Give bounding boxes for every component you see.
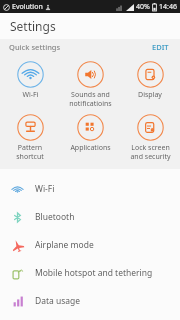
staticText: Wi-Fi (22, 90, 39, 100)
staticText: Airplane mode (35, 239, 94, 251)
staticText: Display (138, 90, 162, 100)
staticText: Mobile hotspot and tethering (35, 267, 153, 279)
button[interactable]: Data usage (0, 287, 180, 315)
button[interactable]: Wi-Fi (0, 175, 180, 203)
staticText: 14:46 (159, 2, 177, 12)
staticText: Data usage (35, 295, 81, 307)
button[interactable]: Mobile hotspot and tethering (0, 259, 180, 287)
button[interactable]: Sounds and notificatioins (60, 59, 120, 110)
staticText: Evolution (12, 2, 43, 12)
staticText: EDIT (152, 42, 169, 52)
staticText: Applications (70, 143, 111, 153)
staticText: Sounds and notificatioins (69, 90, 112, 108)
staticText: Lock screen and security (130, 143, 171, 161)
staticText: Quick settings (9, 42, 61, 52)
button[interactable]: EDIT (150, 40, 171, 54)
button[interactable]: Display (120, 59, 180, 102)
staticText: 40% (136, 2, 150, 12)
button[interactable]: Lock screen and security (120, 112, 180, 163)
staticText: Wi-Fi (35, 183, 55, 195)
button[interactable]: Airplane mode (0, 231, 180, 259)
button[interactable]: Pattern shortcut (0, 112, 60, 163)
button[interactable]: Wi-Fi (0, 59, 60, 102)
staticText: Settings (10, 18, 56, 34)
staticText: Pattern shortcut (16, 143, 44, 161)
staticText: Bluetooth (35, 211, 75, 223)
button[interactable]: Applications (60, 112, 120, 155)
button[interactable]: Bluetooth (0, 203, 180, 231)
